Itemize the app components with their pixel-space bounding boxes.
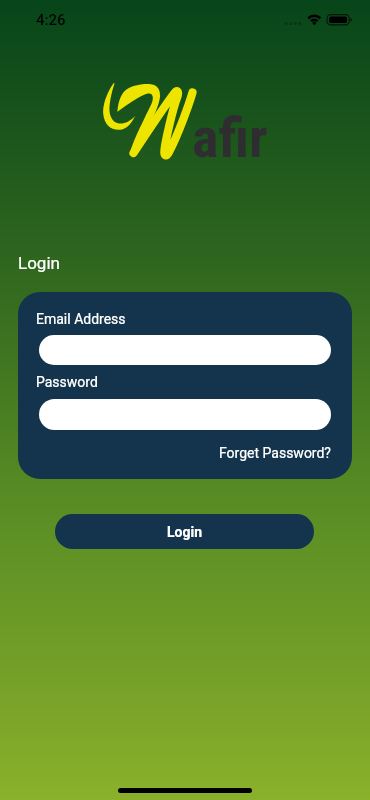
staticText: afir xyxy=(192,105,268,171)
staticText: Login xyxy=(18,253,60,273)
button[interactable]: Forget Password? xyxy=(219,445,331,461)
staticText: Login xyxy=(167,524,203,540)
button[interactable] xyxy=(39,335,331,365)
staticText: Password xyxy=(36,374,98,390)
button[interactable]: Login xyxy=(55,514,314,549)
staticText: 4:26 xyxy=(36,11,66,29)
button[interactable] xyxy=(39,399,331,430)
staticText: Email Address xyxy=(36,311,126,327)
staticText: Forget Password? xyxy=(219,445,331,461)
